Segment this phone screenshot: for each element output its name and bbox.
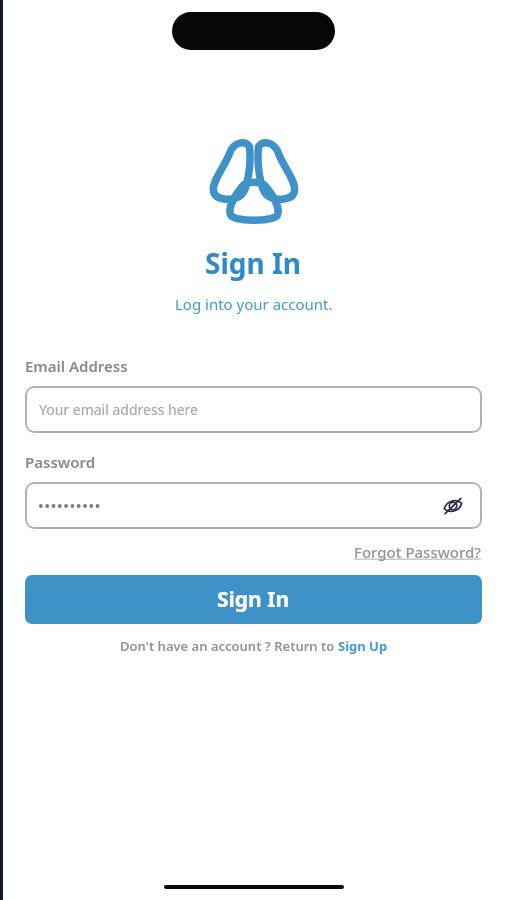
button[interactable]: Your email address here bbox=[25, 386, 482, 433]
staticText: Sign Up bbox=[338, 637, 388, 655]
staticText: Log into your account. bbox=[175, 294, 333, 314]
staticText: Forgot Password? bbox=[354, 542, 482, 562]
button[interactable]: Sign Up bbox=[338, 637, 388, 655]
staticText: Your email address here bbox=[39, 400, 198, 419]
staticText: Password bbox=[25, 452, 96, 472]
button[interactable]: Show password bbox=[438, 491, 468, 521]
staticText: Sign In bbox=[205, 244, 302, 282]
button[interactable]: Forgot Password? bbox=[354, 542, 482, 562]
staticText: Sign In bbox=[217, 585, 290, 614]
button[interactable]: Show password bbox=[25, 482, 482, 529]
button[interactable]: Sign In bbox=[25, 575, 482, 624]
staticText: Don't have an account ? Return to bbox=[120, 637, 338, 655]
staticText: Email Address bbox=[25, 356, 128, 376]
